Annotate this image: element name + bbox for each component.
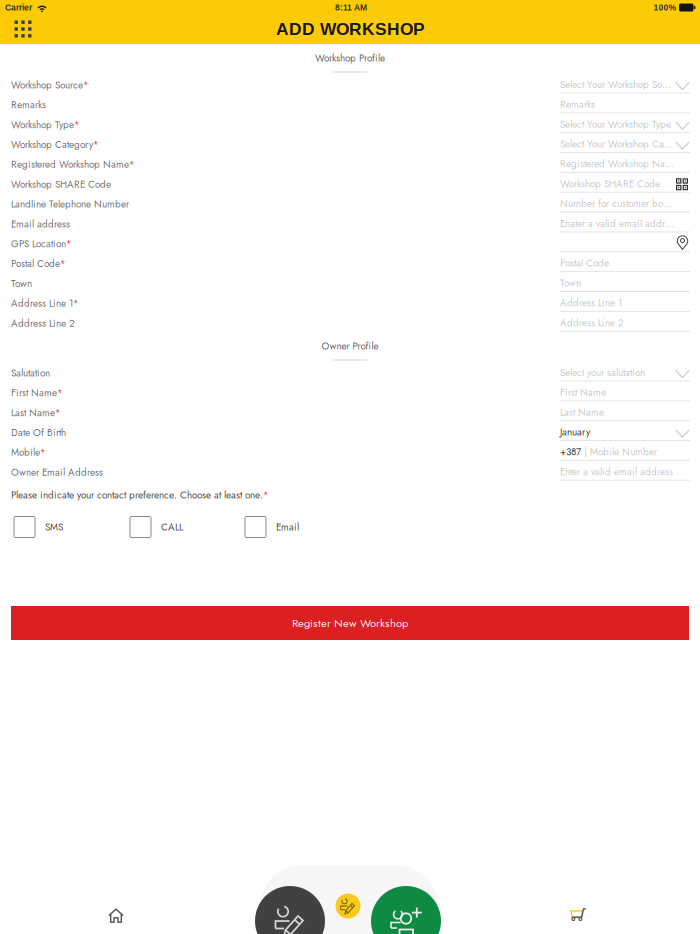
- staticText: Workshop Category: [11, 137, 93, 152]
- button[interactable]: Add New: [371, 886, 441, 934]
- staticText: Remarks: [560, 97, 595, 111]
- staticText: +387: [560, 445, 581, 459]
- button[interactable]: Workshop Source: [11, 77, 311, 93]
- staticText: Postal Code: [560, 256, 609, 270]
- button[interactable]: Registered Workshop Na…: [560, 156, 690, 174]
- staticText: ADD WORKSHOP: [276, 19, 425, 39]
- staticText: *: [73, 297, 79, 310]
- button[interactable]: Cart: [557, 896, 601, 934]
- staticText: *: [93, 138, 99, 151]
- staticText: [581, 445, 584, 459]
- button[interactable]: Select your salutation: [560, 364, 690, 382]
- button[interactable]: Enater a valid email addr…: [560, 215, 690, 233]
- staticText: Remarks: [11, 98, 46, 112]
- button[interactable]: Remarks: [11, 97, 311, 113]
- button[interactable]: Mobile: [11, 444, 311, 460]
- staticText: Registered Workshop Name: [11, 157, 129, 172]
- button[interactable]: Workshop SHARE Code: [560, 176, 690, 194]
- button[interactable]: Date Of Birth: [11, 425, 311, 441]
- button[interactable]: Landline Telephone Number: [11, 196, 311, 212]
- staticText: *: [263, 488, 269, 502]
- button[interactable]: +387: [560, 444, 690, 462]
- button[interactable]: Salutation: [11, 365, 311, 381]
- staticText: Enter a valid email address: [560, 465, 673, 479]
- button[interactable]: Number for customer bo…: [560, 196, 690, 214]
- staticText: *: [83, 78, 89, 92]
- staticText: Registered Workshop Na…: [560, 157, 674, 171]
- staticText: Address Line 1: [11, 296, 73, 310]
- button[interactable]: Postal Code: [560, 255, 690, 273]
- button[interactable]: GPS Location: [11, 236, 311, 252]
- staticText: Carrier: [5, 3, 32, 12]
- button[interactable]: Select Your Workshop Ca…: [560, 136, 690, 154]
- staticText: Select Your Workshop Ca…: [560, 137, 673, 151]
- button[interactable]: Address Line 2: [11, 315, 311, 331]
- button[interactable]: Address Line 1: [560, 295, 690, 313]
- staticText: Please indicate your contact preference.…: [11, 488, 263, 502]
- staticText: Date Of Birth: [11, 425, 66, 440]
- button[interactable]: Postal Code: [11, 256, 311, 272]
- staticText: SMS: [45, 520, 63, 534]
- button[interactable]: SMS: [14, 515, 109, 539]
- staticText: 8:11 AM: [335, 3, 367, 12]
- staticText: Email address: [11, 217, 70, 231]
- button[interactable]: Town: [560, 275, 690, 293]
- button[interactable]: Workshop Type: [11, 117, 311, 133]
- button[interactable]: Menu: [6, 15, 40, 43]
- button[interactable]: Register New Workshop: [11, 606, 689, 640]
- button[interactable]: Remarks: [560, 96, 690, 114]
- button[interactable]: Registered Workshop Name: [11, 156, 311, 172]
- staticText: Landline Telephone Number: [11, 197, 129, 211]
- staticText: | Mobile Number: [584, 445, 657, 459]
- staticText: January: [560, 425, 590, 439]
- staticText: Workshop Profile: [315, 51, 385, 65]
- button[interactable]: [560, 235, 690, 253]
- staticText: Address Line 2: [560, 316, 624, 330]
- button[interactable]: CALL: [130, 515, 225, 539]
- staticText: Postal Code: [11, 256, 60, 271]
- staticText: Select your salutation: [560, 365, 645, 380]
- button[interactable]: Select Your Workshop Type: [560, 116, 690, 134]
- button[interactable]: Address Line 1: [11, 295, 311, 311]
- staticText: Salutation: [11, 366, 50, 380]
- button[interactable]: Workshop SHARE Code: [11, 176, 311, 192]
- staticText: 100%: [653, 3, 676, 12]
- staticText: CALL: [161, 520, 183, 534]
- staticText: *: [40, 446, 46, 459]
- staticText: *: [129, 158, 135, 171]
- button[interactable]: Town: [11, 275, 311, 291]
- staticText: Select Your Workshop So…: [560, 77, 671, 92]
- staticText: Enater a valid email addr…: [560, 216, 674, 231]
- button[interactable]: Manage: [255, 886, 325, 934]
- button[interactable]: Workshop Category: [11, 137, 311, 153]
- button[interactable]: Last Name: [11, 405, 311, 421]
- button[interactable]: Quick edit: [335, 893, 360, 918]
- button[interactable]: Email address: [11, 216, 311, 232]
- staticText: Town: [560, 276, 581, 290]
- button[interactable]: Enter a valid email address: [560, 464, 690, 482]
- staticText: Owner Profile: [321, 339, 378, 353]
- staticText: Owner Email Address: [11, 465, 103, 479]
- button[interactable]: Home: [94, 896, 138, 934]
- staticText: *: [60, 257, 66, 270]
- staticText: First Name: [11, 386, 57, 400]
- staticText: *: [74, 118, 80, 131]
- staticText: Number for customer bo…: [560, 196, 672, 211]
- staticText: *: [57, 386, 63, 400]
- button[interactable]: Select Your Workshop So…: [560, 76, 690, 94]
- staticText: Address Line 2: [11, 316, 75, 330]
- staticText: Address Line 1: [560, 296, 622, 310]
- staticText: Email: [276, 520, 299, 534]
- button[interactable]: Email: [245, 515, 340, 539]
- button[interactable]: First Name: [11, 385, 311, 401]
- button[interactable]: Owner Email Address: [11, 464, 311, 480]
- button[interactable]: First Name: [560, 384, 690, 402]
- button[interactable]: Last Name: [560, 404, 690, 422]
- staticText: *: [66, 237, 72, 251]
- staticText: Workshop SHARE Code: [11, 177, 111, 191]
- staticText: GPS Location: [11, 237, 66, 251]
- button[interactable]: January: [560, 424, 690, 442]
- staticText: First Name: [560, 385, 606, 399]
- staticText: Mobile: [11, 445, 40, 460]
- button[interactable]: Address Line 2: [560, 315, 690, 333]
